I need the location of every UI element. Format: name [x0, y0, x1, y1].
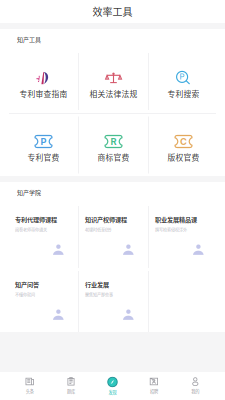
button[interactable]: 知识产权师课程 [79, 203, 148, 271]
staticText: 版权官费 [167, 151, 199, 163]
button[interactable]: 行业发展 [79, 268, 148, 336]
staticText: 不懂你就问 [15, 292, 35, 298]
staticText: P [40, 136, 46, 147]
staticText: 知产问答 [15, 280, 39, 289]
button[interactable]: 专利代理师课程 [9, 203, 78, 271]
staticText: 40课时低至699 [85, 227, 111, 233]
staticText: 知识产权师课程 [85, 215, 127, 224]
staticText: C [180, 136, 187, 147]
staticText: 行业发展 [85, 280, 109, 289]
staticText: 招聘 [150, 388, 158, 394]
staticText: 聚焦知产那些事 [85, 292, 113, 298]
staticText: 专利审查指南 [19, 88, 67, 99]
staticText: R [110, 136, 116, 147]
staticText: P [179, 72, 184, 81]
staticText: 撰写检索侵权涉外 [155, 227, 187, 233]
staticText: 专利代理师课程 [15, 215, 57, 224]
button[interactable]: P [149, 50, 218, 113]
button[interactable]: 相关法律法规 [79, 50, 148, 113]
button[interactable]: 职业发展精品课 [149, 203, 218, 271]
button[interactable]: 招聘 [133, 372, 175, 400]
button[interactable]: C [149, 113, 218, 176]
staticText: 效率工具 [92, 4, 132, 19]
staticText: 知产工具 [17, 35, 41, 44]
button[interactable]: 知产问答 [9, 268, 78, 336]
staticText: 头条 [26, 388, 34, 394]
staticText: 发现 [108, 389, 116, 395]
button[interactable]: 我的 [175, 372, 216, 400]
button[interactable]: 专利审查指南 [9, 50, 78, 113]
staticText: 专利官费 [27, 151, 59, 163]
button[interactable]: 头条 [9, 372, 50, 400]
button[interactable]: P [9, 113, 78, 176]
staticText: 商标官费 [97, 151, 129, 163]
button[interactable]: 题库 [50, 372, 92, 400]
staticText: 知产学院 [17, 188, 41, 197]
staticText: 阅卷老师带你通关 [15, 227, 47, 233]
staticText: 我的 [191, 388, 199, 394]
staticText: 专利搜索 [167, 88, 199, 99]
button[interactable]: R [79, 113, 148, 176]
staticText: 相关法律法规 [89, 88, 137, 99]
staticText: 职业发展精品课 [155, 215, 197, 224]
staticText: 题库 [67, 388, 75, 394]
button[interactable]: 发现 [92, 372, 133, 400]
